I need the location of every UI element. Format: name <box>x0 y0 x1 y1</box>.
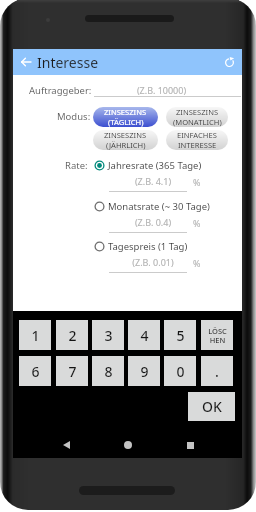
staticText: LÖSC HEN <box>208 326 227 345</box>
button[interactable]: 0 <box>164 356 196 386</box>
staticText: 2 <box>68 326 77 345</box>
button[interactable]: 9 <box>128 356 160 386</box>
staticText: Tagespreis (1 Tag) <box>108 240 188 253</box>
staticText: 1 <box>31 326 40 345</box>
button[interactable]: OK <box>188 392 235 421</box>
staticText: EINFACHES <box>177 130 217 140</box>
staticText: (TÄGLICH) <box>108 117 144 127</box>
button[interactable]: Home <box>117 434 139 456</box>
staticText: 8 <box>104 362 113 381</box>
button[interactable]: 4 <box>128 320 160 350</box>
staticText: % <box>193 217 201 229</box>
staticText: OK <box>202 397 222 416</box>
button[interactable]: Tagespreis (1 Tag) <box>94 238 188 254</box>
button[interactable]: Back <box>13 49 39 75</box>
staticText: . <box>215 362 219 381</box>
button[interactable]: 2 <box>56 320 88 350</box>
button[interactable]: . <box>201 356 233 386</box>
staticText: (Z.B. 4.1) <box>114 175 192 187</box>
staticText: ZINSESZINS <box>104 130 147 140</box>
staticText: Rate: <box>65 159 88 172</box>
button[interactable]: Recents <box>179 434 201 456</box>
staticText: 9 <box>140 362 149 381</box>
button[interactable]: EINFACHES <box>166 130 228 150</box>
button[interactable]: 8 <box>92 356 124 386</box>
staticText: 3 <box>104 326 113 345</box>
staticText: Monatsrate (~ 30 Tage) <box>108 200 210 213</box>
staticText: Modus: <box>57 110 91 123</box>
staticText: (MONATLICH) <box>173 117 222 127</box>
button[interactable]: ZINSESZINS <box>93 130 158 150</box>
staticText: INTERESSE <box>178 140 217 150</box>
button[interactable]: ZINSESZINS <box>166 107 228 127</box>
button[interactable]: 7 <box>56 356 88 386</box>
button[interactable]: 6 <box>19 356 51 386</box>
staticText: ZINSESZINS <box>176 107 219 117</box>
staticText: % <box>193 257 201 269</box>
staticText: (Z.B. 0.01) <box>114 256 192 268</box>
button[interactable]: Back <box>55 434 77 456</box>
button[interactable]: 5 <box>164 320 196 350</box>
staticText: Interesse <box>37 53 99 72</box>
staticText: (Z.B. 0.4) <box>114 216 192 228</box>
staticText: 4 <box>140 326 149 345</box>
staticText: ZINSESZINS <box>104 107 147 117</box>
staticText: Auftraggeber: <box>29 84 92 97</box>
staticText: (Z.B. 10000) <box>88 84 235 96</box>
staticText: (JÄHRLICH) <box>106 140 146 150</box>
button[interactable]: LÖSC HEN <box>201 320 233 350</box>
button[interactable]: Jahresrate (365 Tage) <box>94 157 202 173</box>
staticText: 0 <box>176 362 185 381</box>
staticText: Jahresrate (365 Tage) <box>108 159 202 172</box>
staticText: 6 <box>31 362 40 381</box>
button[interactable]: 1 <box>19 320 51 350</box>
button[interactable]: 3 <box>92 320 124 350</box>
button[interactable]: Monatsrate (~ 30 Tage) <box>94 198 210 214</box>
staticText: % <box>193 176 201 188</box>
button[interactable]: Reset <box>216 49 242 75</box>
staticText: 7 <box>68 362 77 381</box>
staticText: 5 <box>176 326 185 345</box>
button[interactable]: ZINSESZINS <box>93 107 158 127</box>
